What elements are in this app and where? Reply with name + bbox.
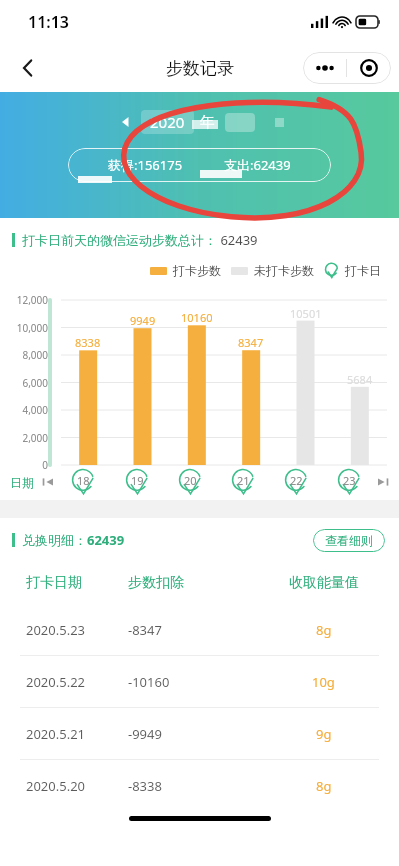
staticText: 收取能量值 [289, 574, 359, 592]
staticText: 10501 [290, 306, 322, 321]
button[interactable]: 19 [110, 464, 163, 500]
staticText: 打卡日 [345, 263, 381, 278]
staticText: 步数扣除 [128, 574, 184, 592]
staticText: 打卡日期 [26, 574, 82, 592]
button[interactable]: 查看细则 [313, 529, 385, 552]
staticText: 12,000 [16, 293, 48, 307]
button[interactable]: 2020 [150, 112, 185, 132]
button[interactable]: 2020.5.20 [0, 760, 399, 811]
button[interactable]: 20 [163, 464, 216, 500]
button[interactable]: More [303, 52, 346, 84]
button[interactable]: 2020.5.23 [0, 604, 399, 655]
staticText: 2020.5.23 [26, 621, 86, 639]
staticText: 获得:156175 [108, 156, 183, 174]
button[interactable]: Close [347, 52, 391, 84]
staticText: 8g [316, 777, 332, 795]
staticText: 10160 [181, 310, 213, 325]
staticText: 10,000 [16, 321, 48, 335]
staticText: 2,000 [22, 431, 48, 445]
button[interactable]: Previous year [115, 111, 137, 133]
staticText: 兑换明细： [22, 532, 87, 548]
staticText: 8g [316, 621, 332, 639]
button[interactable]: Previous days [38, 473, 56, 491]
staticText: 年 [200, 113, 215, 132]
staticText: 2020 [150, 112, 185, 132]
button[interactable]: 2020.5.22 [0, 656, 399, 707]
staticText: 日期 [10, 475, 34, 490]
button[interactable]: Next days [375, 473, 393, 491]
button[interactable]: 22 [269, 464, 322, 500]
staticText: -10160 [128, 673, 170, 691]
staticText: 未打卡步数 [254, 263, 314, 278]
staticText: -8347 [128, 621, 162, 639]
staticText: 2020.5.22 [26, 673, 86, 691]
staticText: 2020.5.20 [26, 777, 86, 795]
staticText: 23 [343, 473, 356, 488]
staticText: 4,000 [22, 403, 48, 417]
staticText: 查看细则 [325, 533, 373, 548]
staticText: 18 [77, 473, 90, 488]
button[interactable]: 2020.5.21 [0, 708, 399, 759]
staticText: -9949 [128, 725, 162, 743]
button[interactable]: 21 [216, 464, 269, 500]
staticText: 8347 [238, 335, 264, 350]
staticText: 9949 [130, 313, 156, 328]
button[interactable]: 获得:156175 [68, 148, 331, 182]
staticText: -8338 [128, 777, 162, 795]
staticText: 22 [290, 473, 303, 488]
staticText: 8338 [75, 335, 101, 350]
staticText: 5684 [347, 372, 373, 387]
staticText: 21 [237, 473, 250, 488]
staticText: 打卡日前天的微信运动步数总计： [22, 232, 217, 248]
staticText: 19 [131, 473, 144, 488]
staticText: 2020.5.21 [26, 725, 86, 743]
staticText: 10g [312, 673, 335, 691]
staticText: 20 [184, 473, 197, 488]
staticText: 步数记录 [166, 58, 234, 79]
staticText: 支出:62439 [224, 156, 291, 174]
staticText: 8,000 [22, 348, 48, 362]
staticText: 11:13 [28, 11, 70, 33]
button[interactable]: Back [8, 48, 48, 88]
staticText: 6,000 [22, 376, 48, 390]
staticText: 62439 [217, 231, 258, 249]
button[interactable]: 18 [56, 464, 110, 500]
staticText: 0 [42, 458, 48, 472]
button[interactable]: 23 [322, 464, 375, 500]
staticText: 62439 [87, 531, 125, 549]
staticText: 打卡步数 [173, 263, 221, 278]
staticText: 9g [316, 725, 332, 743]
